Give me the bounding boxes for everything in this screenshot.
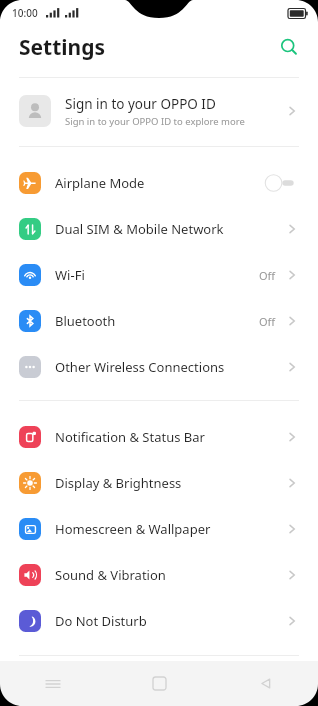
- button[interactable]: Other Wireless Connections: [0, 344, 318, 390]
- staticText: Do Not Disturb: [55, 612, 285, 630]
- button[interactable]: Sound & Vibration: [0, 552, 318, 598]
- staticText: Other Wireless Connections: [55, 358, 285, 376]
- button[interactable]: Do Not Disturb: [0, 598, 318, 644]
- button[interactable]: Airplane Mode toggle: [261, 173, 299, 193]
- staticText: 10:00: [12, 6, 38, 20]
- staticText: Sound & Vibration: [55, 566, 285, 584]
- button[interactable]: Dual SIM & Mobile Network: [0, 206, 318, 252]
- button[interactable]: Homescreen & Wallpaper: [0, 506, 318, 552]
- staticText: Notification & Status Bar: [55, 428, 285, 446]
- button[interactable]: Home: [106, 661, 212, 706]
- staticText: Off: [259, 268, 276, 283]
- staticText: Settings: [19, 33, 106, 62]
- button[interactable]: Sign in to your OPPO ID: [0, 88, 318, 134]
- button[interactable]: Display & Brightness: [0, 460, 318, 506]
- staticText: Display & Brightness: [55, 474, 285, 492]
- staticText: Sign in to your OPPO ID to explore more: [65, 115, 245, 128]
- staticText: Sign in to your OPPO ID: [65, 95, 216, 113]
- staticText: Wi-Fi: [55, 266, 259, 284]
- button[interactable]: Bluetooth: [0, 298, 318, 344]
- staticText: Bluetooth: [55, 312, 259, 330]
- staticText: Dual SIM & Mobile Network: [55, 220, 285, 238]
- button[interactable]: Notification & Status Bar: [0, 414, 318, 460]
- button[interactable]: Back: [212, 661, 318, 706]
- button[interactable]: Airplane Mode: [0, 160, 318, 206]
- button[interactable]: Search: [274, 32, 304, 62]
- staticText: Airplane Mode: [55, 174, 261, 192]
- staticText: Off: [259, 314, 276, 329]
- button[interactable]: Recents: [0, 661, 106, 706]
- staticText: Homescreen & Wallpaper: [55, 520, 285, 538]
- button[interactable]: Wi-Fi: [0, 252, 318, 298]
